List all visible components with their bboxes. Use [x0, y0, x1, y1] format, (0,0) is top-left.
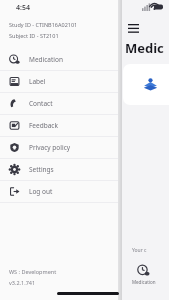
button[interactable]: Open navigation menu: [125, 20, 141, 36]
staticText: Feedback: [29, 121, 58, 130]
staticText: Log out: [29, 187, 53, 196]
staticText: Label: [29, 77, 46, 86]
staticText: v3.2.1.741: [9, 279, 36, 286]
button[interactable]: Log out: [0, 181, 118, 202]
staticText: Medic: [125, 39, 164, 57]
staticText: Contact: [29, 99, 53, 108]
button[interactable]: Feedback: [0, 115, 118, 136]
staticText: Your c: [132, 247, 147, 254]
button[interactable]: Contact: [0, 93, 118, 114]
staticText: Settings: [29, 165, 54, 174]
staticText: Privacy policy: [29, 143, 71, 152]
staticText: Medication: [132, 279, 156, 285]
staticText: 4:54: [16, 3, 30, 13]
button[interactable]: Medication: [118, 264, 169, 291]
staticText: Subject ID - ST2101: [9, 32, 59, 39]
button[interactable]: Label: [0, 71, 118, 92]
button[interactable]: [123, 64, 169, 105]
button[interactable]: Medication: [0, 49, 118, 70]
staticText: WS : Development: [9, 268, 57, 275]
button[interactable]: Privacy policy: [0, 137, 118, 158]
staticText: Medication: [29, 55, 63, 64]
staticText: Study ID - CTINB16A02101: [9, 21, 78, 28]
button[interactable]: Settings: [0, 159, 118, 180]
